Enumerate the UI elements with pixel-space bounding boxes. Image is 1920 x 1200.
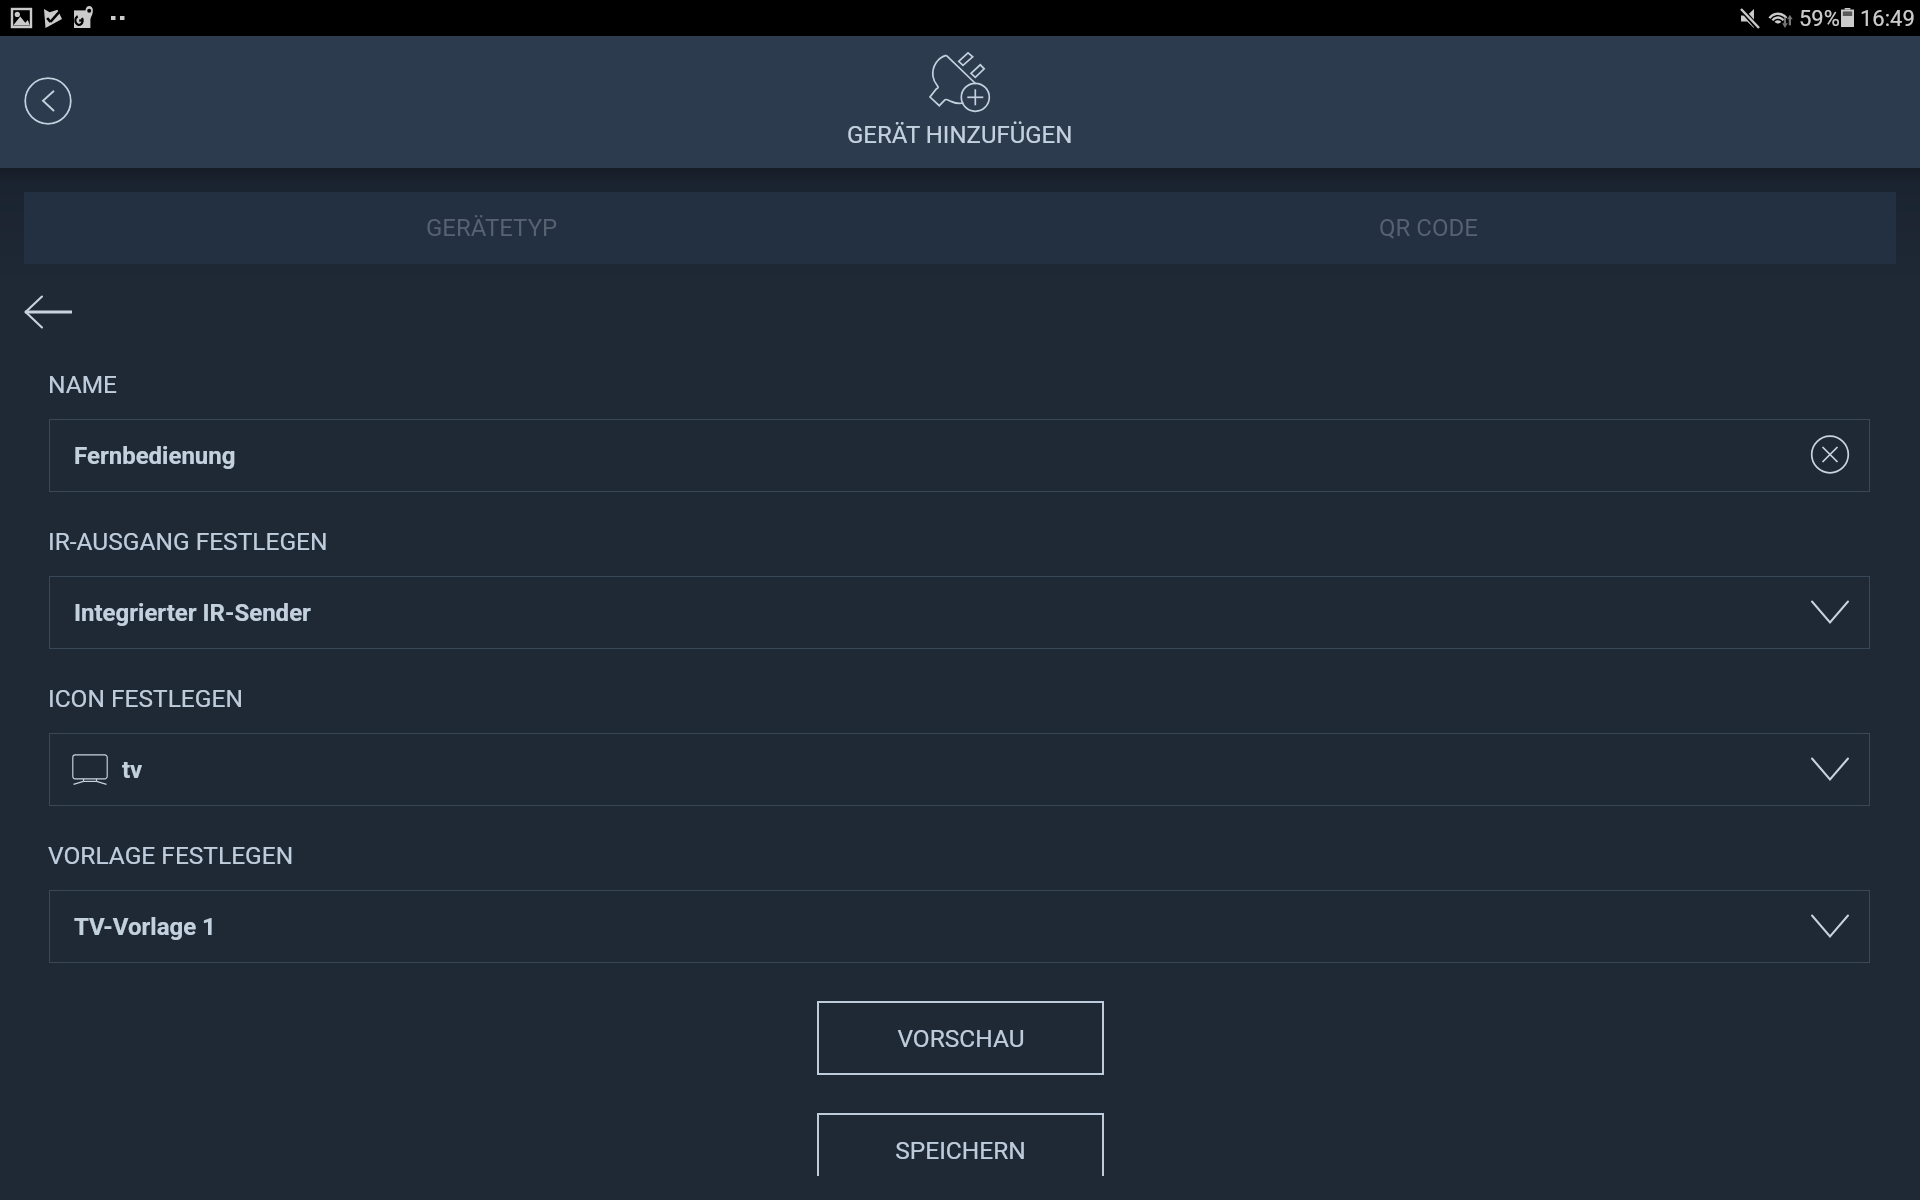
button[interactable]: tv (49, 733, 1870, 806)
button[interactable]: Integrierter IR-Sender (49, 576, 1870, 649)
button[interactable]: Expand (1804, 901, 1856, 953)
button[interactable]: GERÄTETYP (24, 192, 960, 264)
button[interactable]: SPEICHERN (817, 1113, 1104, 1187)
staticText: TV-Vorlage 1 (74, 913, 216, 941)
staticText: QR CODE (1379, 214, 1478, 242)
staticText: GERÄT HINZUFÜGEN (847, 121, 1073, 149)
staticText: VORLAGE FESTLEGEN (48, 841, 294, 870)
button[interactable]: QR CODE (960, 192, 1896, 264)
staticText: VORSCHAU (897, 1024, 1025, 1053)
staticText: Fernbedienung (74, 442, 236, 470)
staticText: tv (122, 756, 143, 784)
staticText: Integrierter IR-Sender (74, 599, 311, 627)
staticText: GERÄTETYP (426, 214, 558, 242)
staticText: ICON FESTLEGEN (48, 684, 243, 713)
button[interactable]: Expand (1804, 744, 1856, 796)
staticText: 16:49 (1860, 6, 1915, 32)
staticText: IR-AUSGANG FESTLEGEN (48, 527, 328, 556)
button[interactable]: Expand (1804, 587, 1856, 639)
button[interactable]: Clear (1804, 430, 1856, 482)
staticText: SPEICHERN (895, 1136, 1026, 1165)
button[interactable]: Back (24, 77, 72, 125)
staticText: 59% (1799, 6, 1840, 32)
button[interactable]: Back (0, 284, 110, 340)
button[interactable]: Fernbedienung (49, 419, 1870, 492)
button[interactable]: TV-Vorlage 1 (49, 890, 1870, 963)
staticText: NAME (48, 370, 117, 399)
button[interactable]: VORSCHAU (817, 1001, 1104, 1075)
